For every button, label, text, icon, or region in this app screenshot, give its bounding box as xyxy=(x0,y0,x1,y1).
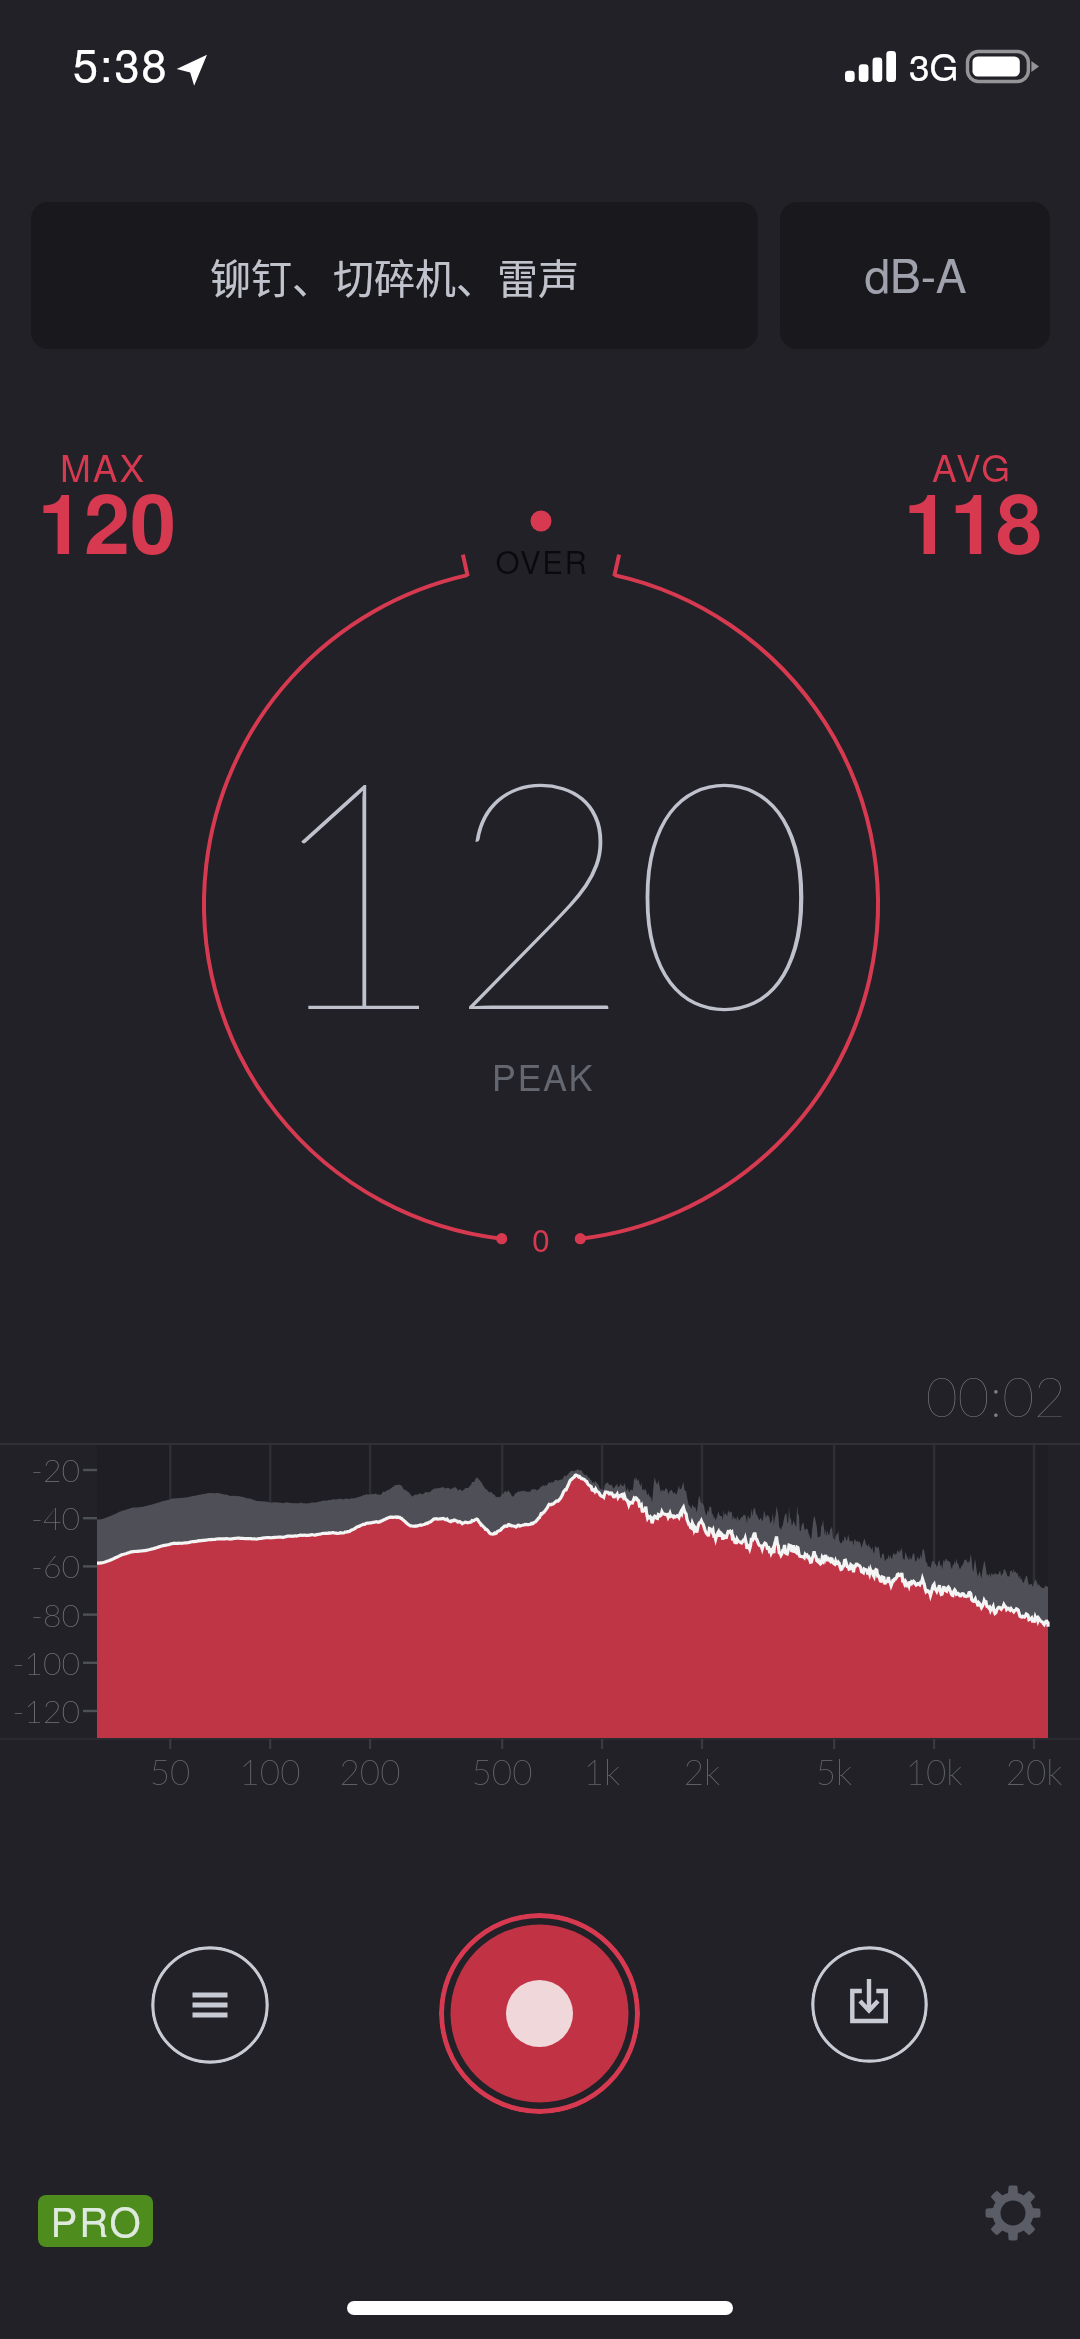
staticText: 3G xyxy=(909,39,959,92)
staticText: 00:02 xyxy=(760,1363,1066,1429)
staticText: 2k xyxy=(632,1750,772,1792)
staticText: MAX xyxy=(43,440,163,493)
button[interactable]: Record xyxy=(439,1913,640,2114)
button[interactable]: Settings xyxy=(973,2173,1053,2253)
staticText: PEAK xyxy=(443,1050,643,1102)
staticText: 50 xyxy=(100,1750,240,1792)
staticText: -60 xyxy=(0,1546,80,1584)
staticText: 10k xyxy=(864,1750,1004,1792)
staticText: 铆钉、切碎机、雷声 xyxy=(210,246,579,305)
staticText: PRO xyxy=(50,2195,143,2243)
staticText: -80 xyxy=(0,1595,80,1633)
staticText: 200 xyxy=(300,1750,440,1792)
staticText: 20k xyxy=(964,1750,1080,1792)
button[interactable]: Menu xyxy=(151,1946,269,2064)
button[interactable]: PRO xyxy=(38,2195,153,2247)
staticText: AVG xyxy=(912,440,1032,493)
button[interactable]: dB-A xyxy=(780,202,1050,349)
staticText: 120 xyxy=(27,461,187,580)
staticText: 120 xyxy=(240,695,840,1077)
staticText: 1k xyxy=(532,1750,672,1792)
staticText: -40 xyxy=(0,1498,80,1536)
staticText: OVER xyxy=(442,538,642,582)
button[interactable]: Save recording xyxy=(811,1946,928,2063)
staticText: -20 xyxy=(0,1450,80,1488)
button[interactable]: 铆钉、切碎机、雷声 xyxy=(31,202,758,349)
staticText: -120 xyxy=(0,1691,80,1729)
staticText: 5k xyxy=(764,1750,904,1792)
staticText: 118 xyxy=(893,461,1053,580)
staticText: 100 xyxy=(200,1750,340,1792)
staticText: 5:38 xyxy=(73,30,169,94)
staticText: dB-A xyxy=(864,240,967,306)
staticText: -100 xyxy=(0,1643,80,1681)
staticText: 500 xyxy=(432,1750,572,1792)
staticText: 0 xyxy=(506,1215,576,1261)
